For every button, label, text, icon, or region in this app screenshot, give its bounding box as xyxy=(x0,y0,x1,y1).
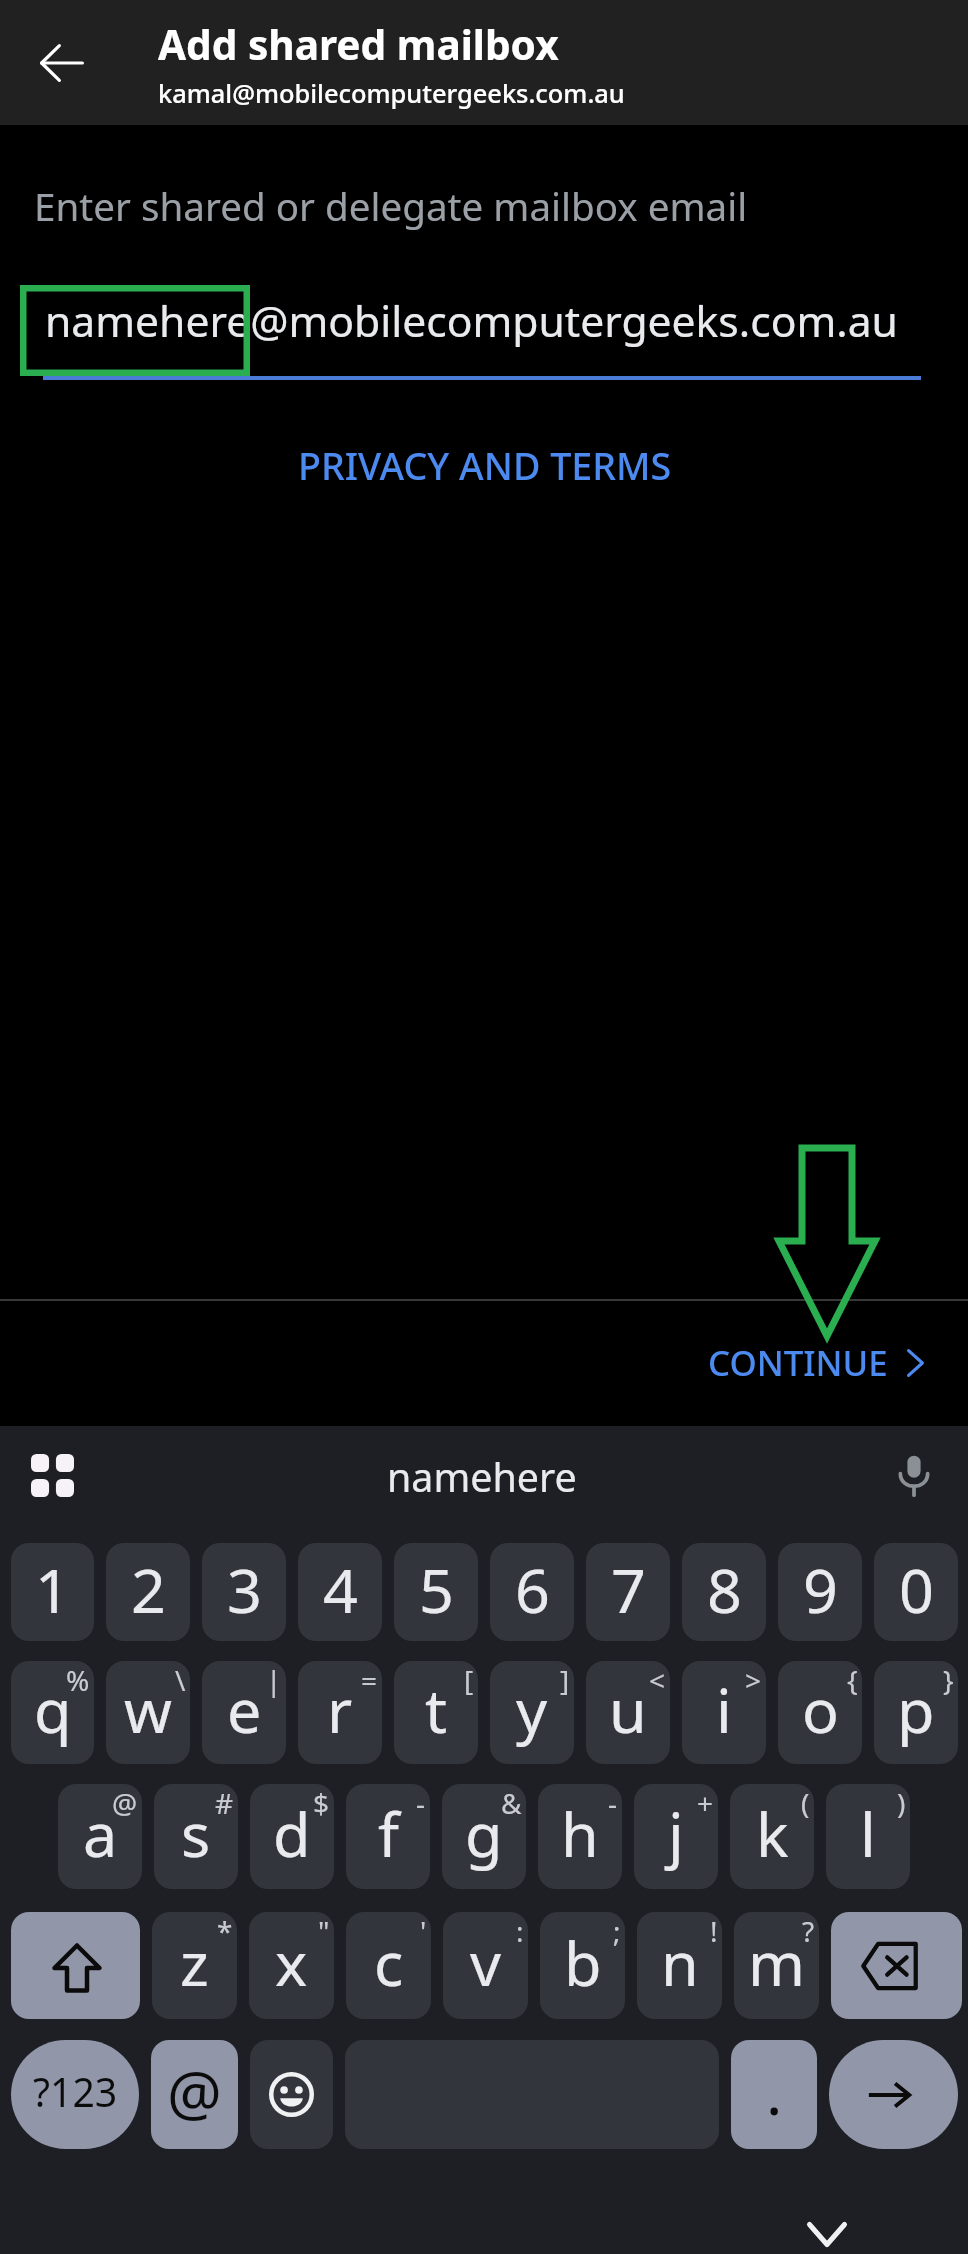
staticText: q xyxy=(34,1668,72,1751)
staticText: . xyxy=(766,2050,783,2133)
button[interactable]: w xyxy=(106,1661,190,1764)
staticText: ' xyxy=(420,1912,427,1950)
button[interactable]: o xyxy=(778,1661,862,1764)
button[interactable]: Voice input xyxy=(872,1433,956,1517)
staticText: h xyxy=(561,1792,599,1875)
staticText: b xyxy=(564,1921,602,2004)
button[interactable]: Shift xyxy=(11,1912,140,2019)
staticText: & xyxy=(501,1784,522,1822)
button[interactable]: 4 xyxy=(298,1543,382,1641)
staticText: m xyxy=(748,1921,806,2004)
button[interactable]: e xyxy=(202,1661,286,1764)
staticText: 0 xyxy=(899,1548,934,1631)
staticText: v xyxy=(470,1921,501,2004)
button[interactable]: c xyxy=(346,1912,431,2019)
staticText: : xyxy=(516,1912,524,1950)
button[interactable]: n xyxy=(637,1912,722,2019)
button[interactable]: 5 xyxy=(394,1543,478,1641)
button[interactable]: z xyxy=(152,1912,237,2019)
staticText: p xyxy=(897,1668,935,1751)
button[interactable]: a xyxy=(58,1784,142,1889)
button[interactable]: 1 xyxy=(11,1543,94,1641)
staticText: n xyxy=(661,1921,699,2004)
staticText: i xyxy=(716,1668,732,1751)
button[interactable]: 2 xyxy=(106,1543,190,1641)
staticText: 9 xyxy=(803,1548,838,1631)
button[interactable]: 3 xyxy=(202,1543,286,1641)
button[interactable]: @ xyxy=(151,2040,238,2149)
staticText: d xyxy=(273,1792,311,1875)
staticText: | xyxy=(266,1661,282,1699)
button[interactable]: g xyxy=(442,1784,526,1889)
button[interactable]: j xyxy=(634,1784,718,1889)
button[interactable]: x xyxy=(249,1912,334,2019)
staticText: 7 xyxy=(611,1548,646,1631)
button[interactable]: m xyxy=(734,1912,819,2019)
staticText: s xyxy=(181,1792,211,1875)
button[interactable]: s xyxy=(154,1784,238,1889)
button[interactable]: Enter xyxy=(829,2040,958,2149)
staticText: > xyxy=(745,1661,762,1699)
staticText: * xyxy=(217,1912,233,1950)
button[interactable]: l xyxy=(826,1784,910,1889)
staticText: { xyxy=(847,1661,858,1699)
button[interactable]: . xyxy=(731,2040,817,2149)
button[interactable]: f xyxy=(346,1784,430,1889)
button[interactable]: Backspace xyxy=(831,1912,962,2019)
button[interactable]: 9 xyxy=(778,1543,862,1641)
staticText: y xyxy=(516,1668,548,1751)
button[interactable]: Back xyxy=(20,21,104,105)
staticText: $ xyxy=(313,1784,330,1822)
staticText: = xyxy=(361,1661,378,1699)
staticText: [ xyxy=(464,1661,474,1699)
button[interactable]: y xyxy=(490,1661,574,1764)
button[interactable]: 6 xyxy=(490,1543,574,1641)
button[interactable]: t xyxy=(394,1661,478,1764)
staticText: \ xyxy=(175,1661,186,1699)
staticText: kamal@mobilecomputergeeks.com.au xyxy=(158,76,625,111)
staticText: a xyxy=(83,1792,118,1875)
staticText: @ xyxy=(112,1784,138,1822)
staticText: e xyxy=(227,1668,262,1751)
button[interactable]: i xyxy=(682,1661,766,1764)
staticText: 5 xyxy=(419,1548,454,1631)
staticText: } xyxy=(943,1661,954,1699)
button[interactable]: 8 xyxy=(682,1543,766,1641)
staticText: PRIVACY AND TERMS xyxy=(298,440,672,491)
staticText: j xyxy=(668,1792,684,1875)
button[interactable]: v xyxy=(443,1912,528,2019)
staticText: 1 xyxy=(35,1548,70,1631)
staticText: g xyxy=(465,1792,503,1875)
button[interactable]: h xyxy=(538,1784,622,1889)
button[interactable]: Keyboard toolbar xyxy=(10,1433,94,1517)
staticText: Enter shared or delegate mailbox email xyxy=(34,180,748,233)
staticText: ( xyxy=(801,1784,810,1822)
button[interactable]: d xyxy=(250,1784,334,1889)
staticText: ; xyxy=(613,1912,621,1950)
button[interactable]: CONTINUE xyxy=(688,1325,954,1400)
button[interactable]: r xyxy=(298,1661,382,1764)
button[interactable]: q xyxy=(11,1661,94,1764)
staticText: - xyxy=(416,1784,426,1822)
button[interactable]: Hide keyboard xyxy=(785,2192,869,2254)
button[interactable]: 7 xyxy=(586,1543,670,1641)
button[interactable]: PRIVACY AND TERMS xyxy=(286,430,684,501)
button[interactable]: Emoji xyxy=(250,2040,333,2149)
staticText: + xyxy=(697,1784,714,1822)
button[interactable]: b xyxy=(540,1912,625,2019)
staticText: z xyxy=(180,1921,209,2004)
staticText: w xyxy=(124,1668,172,1751)
staticText: ] xyxy=(560,1661,570,1699)
staticText: # xyxy=(215,1784,234,1822)
button[interactable]: 0 xyxy=(874,1543,958,1641)
staticText: r xyxy=(327,1668,353,1751)
button[interactable]: u xyxy=(586,1661,670,1764)
button[interactable]: p xyxy=(874,1661,958,1764)
staticText: x xyxy=(275,1921,308,2004)
staticText: k xyxy=(756,1792,789,1875)
button[interactable]: ?123 xyxy=(11,2040,139,2149)
button[interactable]: k xyxy=(730,1784,814,1889)
staticText: % xyxy=(66,1661,90,1699)
staticText: ?123 xyxy=(33,2065,118,2118)
